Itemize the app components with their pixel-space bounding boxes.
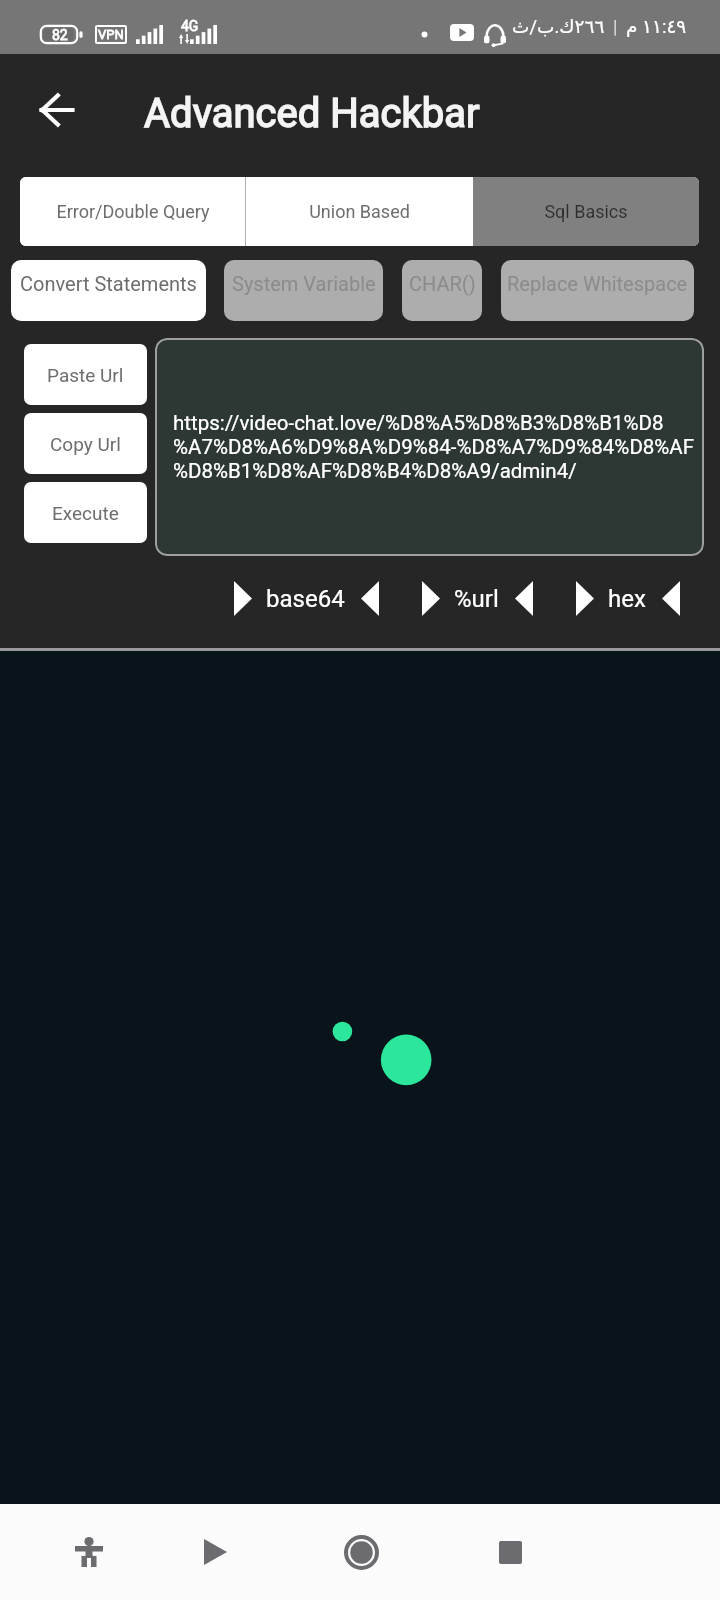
button[interactable]: Accessibility bbox=[41, 1504, 137, 1600]
staticText: base64 bbox=[266, 585, 345, 613]
button[interactable]: Back bbox=[22, 76, 90, 144]
button[interactable]: Encode base64 bbox=[234, 581, 252, 616]
staticText: hex bbox=[608, 585, 646, 613]
staticText: Sql Basics bbox=[544, 201, 628, 222]
staticText: Error/Double Query bbox=[56, 201, 210, 222]
staticText: ١١:٤٩ م bbox=[626, 16, 687, 38]
staticText: VPN bbox=[98, 27, 124, 42]
button[interactable]: Replace Whitespace bbox=[501, 260, 694, 321]
button[interactable]: Encode hex bbox=[576, 581, 594, 616]
button[interactable]: Error/Double Query bbox=[20, 177, 245, 246]
staticText: Advanced Hackbar bbox=[144, 90, 480, 137]
button[interactable]: Union Based bbox=[246, 177, 473, 246]
staticText: Union Based bbox=[309, 201, 410, 222]
button[interactable]: Home bbox=[313, 1504, 409, 1600]
button[interactable]: Decode %url bbox=[515, 581, 533, 616]
staticText: Replace Whitespace bbox=[507, 272, 688, 295]
staticText: https://video-chat.love/%D8%A5%D8%B3%D8%… bbox=[173, 411, 695, 483]
button[interactable]: Decode base64 bbox=[361, 581, 379, 616]
button[interactable]: CHAR() bbox=[402, 260, 482, 321]
button[interactable]: Execute bbox=[24, 482, 147, 543]
staticText: Paste Url bbox=[47, 364, 124, 386]
button[interactable]: Convert Statements bbox=[11, 260, 206, 321]
staticText: Convert Statements bbox=[20, 272, 197, 295]
button[interactable]: Sql Basics bbox=[473, 177, 699, 246]
button[interactable]: https://video-chat.love/%D8%A5%D8%B3%D8%… bbox=[155, 338, 704, 556]
staticText: Execute bbox=[52, 502, 119, 524]
staticText: ٢٦٦ك.ب/ث bbox=[512, 16, 605, 38]
staticText: %url bbox=[454, 585, 499, 613]
button[interactable]: Decode hex bbox=[662, 581, 680, 616]
staticText: | bbox=[613, 16, 618, 38]
button[interactable]: Copy Url bbox=[24, 413, 147, 474]
staticText: System Variable bbox=[232, 272, 376, 295]
button[interactable]: Back bbox=[167, 1504, 263, 1600]
staticText: CHAR() bbox=[409, 272, 476, 295]
staticText: Copy Url bbox=[50, 433, 121, 455]
button[interactable]: System Variable bbox=[224, 260, 383, 321]
button[interactable]: Paste Url bbox=[24, 344, 147, 405]
button[interactable]: Recents bbox=[462, 1504, 558, 1600]
button[interactable]: Encode %url bbox=[422, 581, 440, 616]
staticText: 4G bbox=[181, 18, 199, 34]
staticText: 82 bbox=[52, 27, 68, 43]
